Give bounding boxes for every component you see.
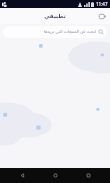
button[interactable]: Recent apps: [77, 168, 99, 183]
button[interactable]: Home: [44, 168, 66, 183]
button[interactable]: Toggle theme: [97, 11, 107, 21]
staticText: ابحث عن المنتجات التي تريدها: [43, 29, 96, 35]
button[interactable]: ابحث عن المنتجات التي تريدها: [3, 26, 107, 38]
staticText: 11:47: [96, 1, 108, 7]
button[interactable]: Back: [11, 168, 33, 183]
staticText: تطبيقي: [44, 13, 66, 19]
